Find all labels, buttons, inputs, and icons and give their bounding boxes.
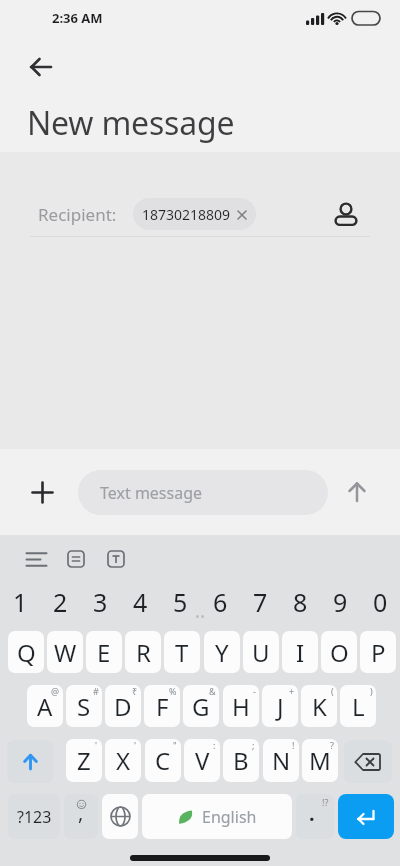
staticText: Text message	[100, 482, 203, 504]
staticText: 5	[173, 585, 188, 617]
button[interactable]: J	[262, 685, 298, 727]
staticText: :	[213, 739, 216, 751]
button[interactable]: W	[47, 631, 83, 673]
button[interactable]: U	[243, 631, 279, 673]
button[interactable]: ,	[64, 794, 98, 839]
button[interactable]	[343, 478, 371, 506]
staticText: ;	[252, 739, 255, 751]
staticText: F	[156, 690, 169, 723]
button[interactable]	[18, 544, 54, 574]
staticText: '	[95, 739, 98, 751]
staticText: B	[233, 744, 249, 777]
button[interactable]: 8	[282, 585, 318, 617]
staticText: 18730218809	[142, 205, 231, 224]
button[interactable]	[28, 478, 56, 506]
staticText: -	[253, 685, 256, 697]
staticText: 8	[293, 585, 308, 617]
button[interactable]: 5	[162, 585, 198, 617]
staticText: %	[169, 685, 177, 697]
button[interactable]: Z	[66, 739, 102, 782]
button[interactable]: H	[223, 685, 259, 727]
staticText: 9	[333, 585, 348, 617]
button[interactable]: 1	[2, 585, 38, 617]
button[interactable]: I	[282, 631, 318, 673]
staticText: #	[93, 685, 99, 697]
staticText: 6	[213, 585, 228, 617]
button[interactable]: F	[144, 685, 180, 727]
staticText: T	[175, 636, 189, 669]
button[interactable]: P	[360, 631, 396, 673]
button[interactable]	[98, 544, 134, 574]
button[interactable]: T	[164, 631, 200, 673]
button[interactable]: 2	[42, 585, 78, 617]
button[interactable]: S	[66, 685, 102, 727]
button[interactable]: R	[125, 631, 161, 673]
staticText: 1	[13, 585, 28, 617]
button[interactable]: L	[340, 685, 376, 727]
button[interactable]: D	[105, 685, 141, 727]
button[interactable]: E	[86, 631, 122, 673]
staticText: S	[77, 690, 91, 723]
staticText: C	[155, 744, 171, 777]
button[interactable]: 3	[82, 585, 118, 617]
staticText: ?	[330, 739, 334, 751]
staticText: J	[277, 690, 284, 723]
staticText: "	[173, 739, 177, 751]
staticText: I	[296, 636, 305, 669]
button[interactable]: 6	[202, 585, 238, 617]
staticText: @	[51, 685, 60, 697]
button[interactable]	[102, 794, 138, 839]
button[interactable]: G	[183, 685, 219, 727]
staticText: W	[54, 636, 77, 669]
button[interactable]: Y	[204, 631, 240, 673]
staticText: Recipient:	[38, 203, 117, 226]
staticText: Y	[215, 636, 229, 669]
staticText: 3	[93, 585, 108, 617]
button[interactable]	[338, 794, 394, 839]
button[interactable]: A	[27, 685, 63, 727]
button[interactable]	[22, 48, 60, 86]
staticText: ₹	[132, 685, 138, 697]
staticText: Z	[77, 744, 91, 777]
button[interactable]: C	[145, 739, 181, 782]
staticText: U	[252, 636, 270, 669]
staticText: !?	[322, 796, 329, 808]
button[interactable]: Q	[8, 631, 44, 673]
button[interactable]: English	[142, 794, 292, 839]
button[interactable]: M	[302, 739, 338, 782]
staticText: New message	[27, 101, 235, 145]
button[interactable]: Text message	[78, 470, 328, 515]
staticText: 2:36 AM	[52, 9, 103, 27]
button[interactable]: .	[296, 794, 334, 839]
staticText: 7	[253, 585, 268, 617]
button[interactable]	[7, 740, 53, 783]
staticText: !	[292, 739, 295, 751]
button[interactable]	[58, 544, 94, 574]
staticText: Q	[17, 636, 36, 669]
staticText: +	[289, 685, 295, 697]
staticText: ?123	[17, 806, 52, 828]
button[interactable]: K	[301, 685, 337, 727]
staticText: &	[209, 685, 216, 697]
staticText: O	[330, 636, 349, 669]
button[interactable]: O	[321, 631, 357, 673]
staticText: P	[371, 636, 386, 669]
staticText: R	[136, 636, 151, 669]
button[interactable]: X	[105, 739, 141, 782]
staticText: L	[352, 690, 365, 723]
button[interactable]: B	[223, 739, 259, 782]
staticText: H	[232, 690, 250, 723]
button[interactable]: 7	[242, 585, 278, 617]
button[interactable]: 18730218809	[133, 198, 256, 230]
button[interactable]: N	[263, 739, 299, 782]
button[interactable]	[330, 196, 360, 232]
button[interactable]	[344, 740, 392, 783]
button[interactable]: 0	[362, 585, 398, 617]
staticText: K	[312, 690, 327, 723]
button[interactable]: 4	[122, 585, 158, 617]
staticText: .	[309, 800, 315, 827]
staticText: N	[272, 744, 291, 777]
button[interactable]: ?123	[8, 794, 60, 839]
button[interactable]: V	[184, 739, 220, 782]
button[interactable]: 9	[322, 585, 358, 617]
